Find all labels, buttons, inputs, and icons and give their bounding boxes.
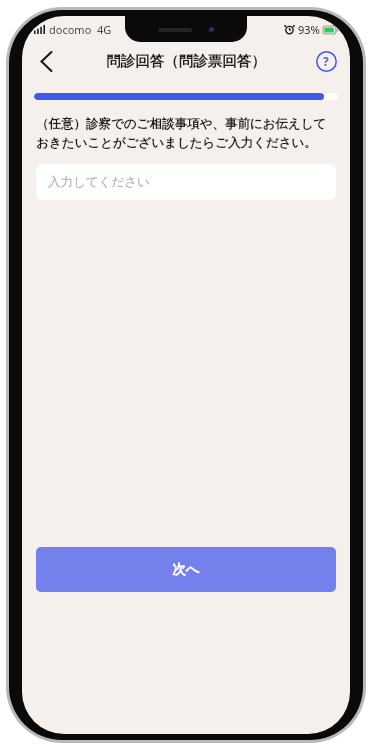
staticText: 4G	[97, 22, 112, 37]
staticText: （任意）診察でのご相談事項や、事前にお伝えしておきたいことがございましたらご入力…	[36, 116, 336, 151]
staticText: 次へ	[172, 561, 200, 578]
button[interactable]: Back	[28, 43, 64, 79]
staticText: ?	[323, 53, 329, 69]
staticText: 入力してください	[48, 174, 150, 190]
staticText: 問診回答（問診票回答）	[106, 52, 266, 70]
button[interactable]: Help	[310, 45, 342, 77]
staticText: docomo	[49, 22, 92, 37]
button[interactable]: 入力してください	[36, 164, 336, 200]
button[interactable]: 次へ	[36, 547, 336, 592]
staticText: 93%	[298, 22, 320, 37]
